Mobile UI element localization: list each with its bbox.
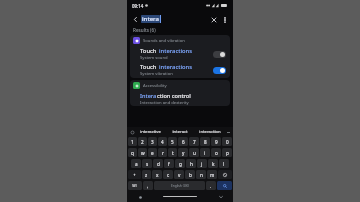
button[interactable]: s	[142, 159, 152, 168]
staticText: 0	[226, 139, 229, 145]
button[interactable]: 7	[189, 137, 199, 146]
staticText: Interaction and dexterity	[140, 100, 189, 106]
button[interactable]: 5	[168, 137, 177, 146]
button[interactable]: Hide keyboard	[217, 193, 225, 201]
button[interactable]: Touch	[130, 62, 230, 78]
button[interactable]: interactive	[135, 127, 165, 136]
button[interactable]: 2	[138, 137, 147, 146]
button[interactable]: 8	[200, 137, 210, 146]
staticText: 2	[141, 139, 144, 145]
button[interactable]: d	[153, 159, 163, 168]
button[interactable]: n	[196, 170, 206, 179]
staticText: 8	[204, 139, 207, 145]
button[interactable]: j	[197, 159, 207, 168]
staticText: f	[168, 161, 170, 167]
button[interactable]: Shift	[128, 170, 141, 179]
staticText: t	[172, 150, 174, 156]
button[interactable]: o	[211, 148, 221, 157]
button[interactable]: Intera	[130, 91, 230, 106]
button[interactable]: l	[219, 159, 229, 168]
staticText: u	[193, 150, 196, 156]
button[interactable]: 0	[222, 137, 232, 146]
button[interactable]: 1	[128, 137, 137, 146]
button[interactable]: !#1	[128, 181, 142, 190]
staticText: 7	[193, 139, 196, 145]
staticText: ,	[147, 183, 149, 189]
staticText: 4	[161, 139, 164, 145]
staticText: 9	[215, 139, 218, 145]
staticText: z	[145, 172, 148, 178]
staticText: Intera	[140, 92, 157, 100]
button[interactable]: g	[175, 159, 185, 168]
staticText: l	[223, 161, 225, 167]
staticText: v	[178, 172, 181, 178]
staticText: x	[156, 172, 159, 178]
staticText: e	[151, 150, 154, 156]
button[interactable]: e	[148, 148, 157, 157]
staticText: interactive	[140, 129, 161, 135]
staticText: h	[190, 161, 193, 167]
button[interactable]: 6	[178, 137, 188, 146]
button[interactable]: i	[200, 148, 210, 157]
button[interactable]: interaction	[195, 127, 225, 136]
button[interactable]: Emoji	[136, 193, 144, 201]
button[interactable]: 9	[211, 137, 221, 146]
staticText: Results (6)	[133, 27, 156, 33]
button[interactable]: h	[186, 159, 196, 168]
button[interactable]: Enabled	[213, 67, 226, 74]
button[interactable]: English (UK)	[154, 181, 205, 190]
button[interactable]: q	[128, 148, 137, 157]
button[interactable]: Touch	[130, 46, 230, 62]
button[interactable]: t	[168, 148, 177, 157]
button[interactable]: More options	[219, 14, 230, 25]
button[interactable]: u	[189, 148, 199, 157]
staticText: 09:14	[132, 3, 144, 9]
button[interactable]: 3	[148, 137, 157, 146]
button[interactable]: x	[152, 170, 162, 179]
staticText: intera	[142, 15, 159, 23]
staticText: 1	[131, 139, 134, 145]
staticText: r	[162, 150, 164, 156]
staticText: o	[215, 150, 218, 156]
button[interactable]: p	[222, 148, 232, 157]
button[interactable]: z	[142, 170, 151, 179]
button[interactable]: f	[164, 159, 174, 168]
button[interactable]: a	[131, 159, 141, 168]
button[interactable]: .	[206, 181, 216, 190]
button[interactable]: y	[178, 148, 188, 157]
staticText: m	[210, 172, 215, 178]
staticText: !#1	[132, 183, 138, 188]
button[interactable]: m	[207, 170, 217, 179]
staticText: interactions	[159, 63, 193, 71]
staticText: g	[179, 161, 182, 167]
button[interactable]: b	[185, 170, 195, 179]
staticText: System sound	[140, 55, 168, 61]
button[interactable]: Back	[130, 14, 141, 25]
button[interactable]: k	[208, 159, 218, 168]
button[interactable]: More suggestions	[225, 129, 231, 135]
staticText: a	[135, 161, 138, 167]
button[interactable]: interact	[165, 127, 195, 136]
button[interactable]: c	[163, 170, 173, 179]
button[interactable]: v	[174, 170, 184, 179]
staticText: d	[157, 161, 160, 167]
button[interactable]: Disabled	[213, 51, 226, 58]
button[interactable]: r	[158, 148, 167, 157]
button[interactable]: Search	[217, 181, 232, 190]
staticText: Accessibility	[143, 83, 167, 89]
staticText: ction control	[157, 92, 191, 100]
staticText: System vibration	[140, 71, 173, 77]
staticText: Touch	[140, 63, 159, 71]
button[interactable]: Backspace	[218, 170, 232, 179]
staticText: English (UK)	[171, 184, 189, 188]
staticText: i	[204, 150, 206, 156]
staticText: c	[167, 172, 170, 178]
staticText: y	[182, 150, 185, 156]
button[interactable]: ,	[143, 181, 153, 190]
button[interactable]: w	[138, 148, 147, 157]
staticText: q	[131, 150, 134, 156]
staticText: b	[189, 172, 192, 178]
button[interactable]: Clipboard	[129, 129, 135, 135]
button[interactable]: 4	[158, 137, 167, 146]
button[interactable]: Clear search	[208, 14, 219, 25]
